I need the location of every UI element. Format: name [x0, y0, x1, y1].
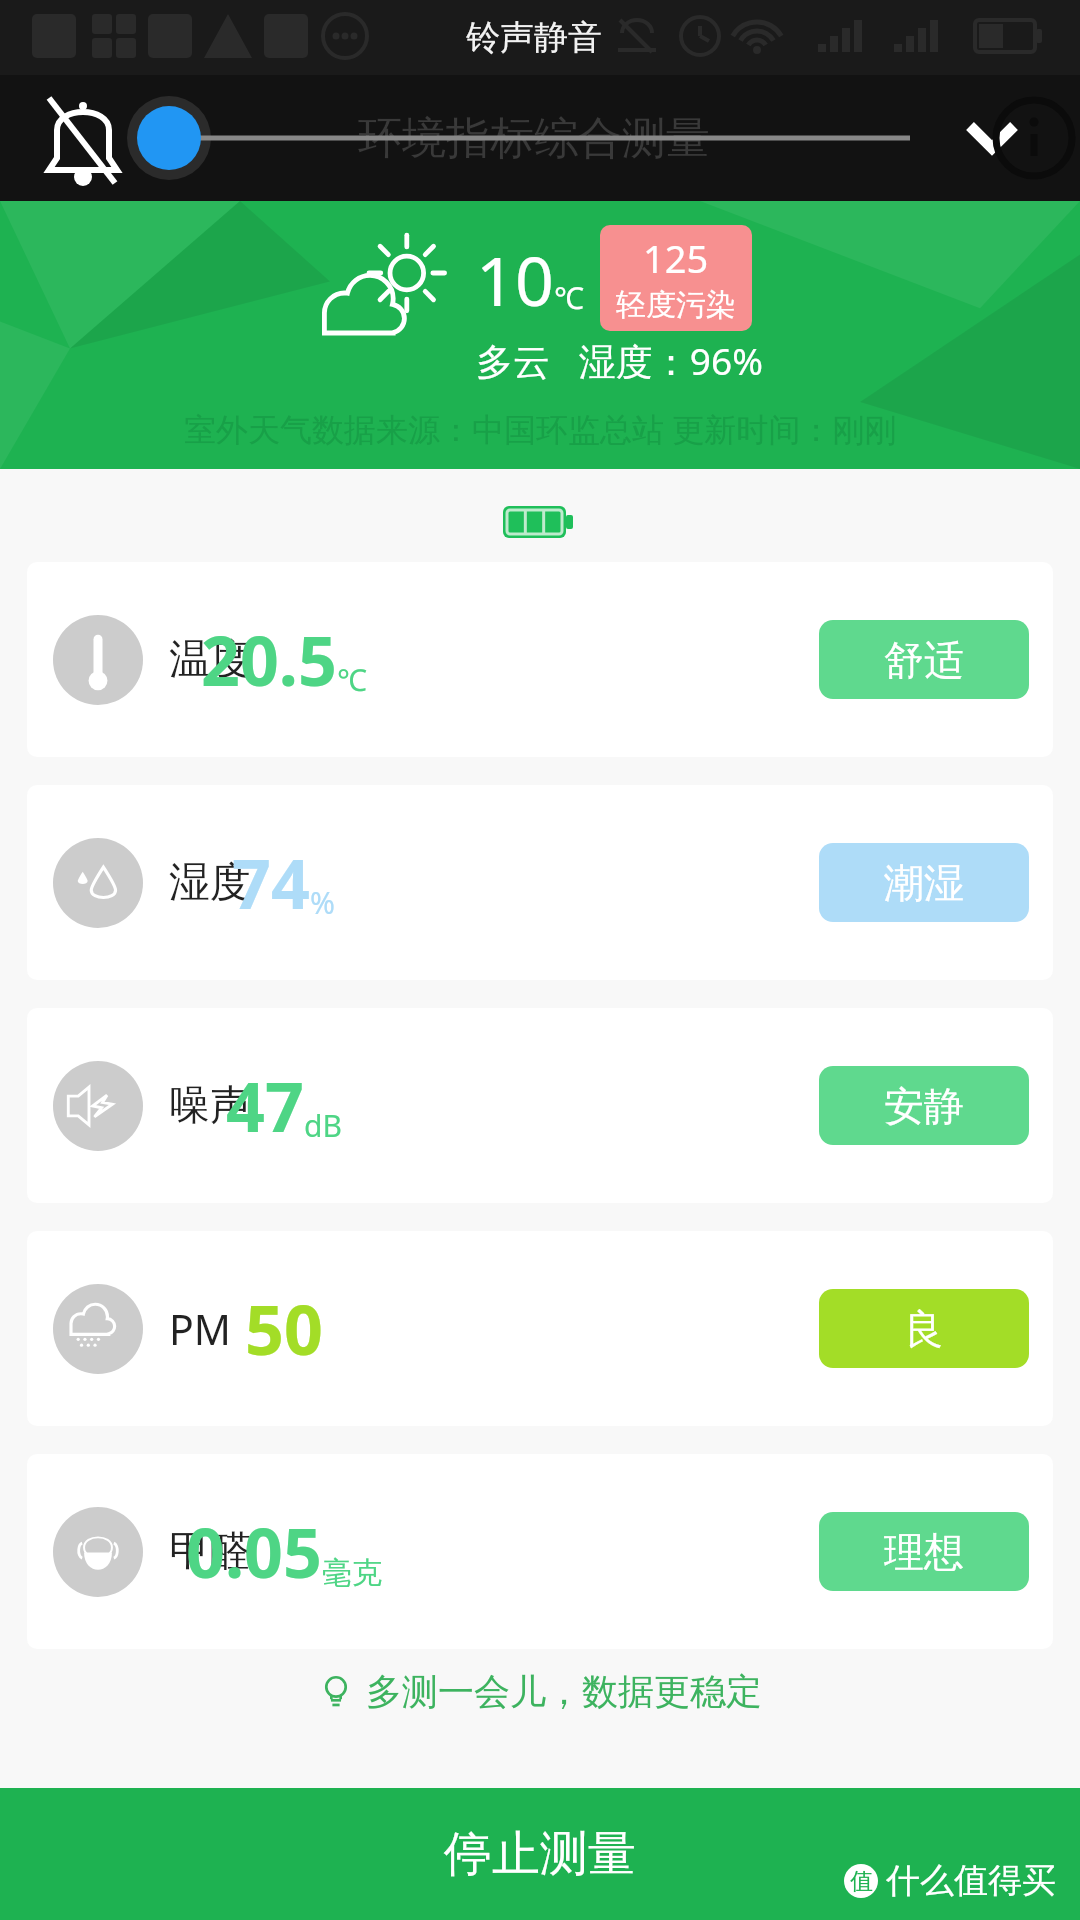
- staticText: 铃声静音: [466, 16, 602, 59]
- staticText: 20.5: [201, 613, 337, 706]
- button[interactable]: 舒适: [819, 620, 1029, 699]
- staticText: 50: [245, 1282, 323, 1375]
- button[interactable]: 停止测量: [0, 1788, 1080, 1920]
- staticText: 理想: [884, 1527, 964, 1577]
- staticText: 安静: [884, 1081, 964, 1131]
- staticText: 0.05: [186, 1505, 322, 1598]
- button[interactable]: 多测一会儿，数据更稳定: [0, 1669, 1080, 1714]
- staticText: PM: [169, 1301, 231, 1357]
- button[interactable]: 温度: [27, 562, 1053, 757]
- staticText: 10: [476, 233, 554, 326]
- staticText: 环境指标综合测量: [358, 111, 710, 166]
- button[interactable]: 理想: [819, 1512, 1029, 1591]
- staticText: 值: [850, 1867, 873, 1896]
- staticText: 47: [226, 1059, 304, 1152]
- staticText: 温度: [169, 634, 251, 686]
- staticText: 多测一会儿，数据更稳定: [366, 1669, 762, 1714]
- staticText: dB: [304, 1105, 342, 1146]
- staticText: ℃: [337, 659, 367, 700]
- staticText: ℃: [554, 277, 584, 318]
- staticText: 室外天气数据来源：中国环监总站 更新时间：刚刚: [184, 407, 897, 451]
- staticText: 74: [232, 836, 310, 929]
- staticText: 125: [643, 232, 709, 284]
- button[interactable]: PM: [27, 1231, 1053, 1426]
- staticText: 噪声: [169, 1080, 251, 1132]
- staticText: 良: [904, 1304, 944, 1354]
- staticText: 多云 湿度：96%: [476, 335, 763, 386]
- button[interactable]: 良: [819, 1289, 1029, 1368]
- staticText: %: [310, 882, 335, 923]
- button[interactable]: 湿度: [27, 785, 1053, 980]
- other: Volume slider: [0, 75, 1080, 201]
- button[interactable]: 噪声: [27, 1008, 1053, 1203]
- button[interactable]: 甲醛: [27, 1454, 1053, 1649]
- staticText: 什么值得买: [886, 1859, 1056, 1902]
- staticText: 停止测量: [444, 1824, 636, 1884]
- staticText: 潮湿: [884, 858, 964, 908]
- staticText: 湿度: [169, 857, 251, 909]
- button[interactable]: 潮湿: [819, 843, 1029, 922]
- button[interactable]: 安静: [819, 1066, 1029, 1145]
- staticText: 甲醛: [169, 1526, 251, 1578]
- staticText: 毫克: [322, 1554, 382, 1592]
- staticText: 舒适: [884, 635, 964, 685]
- staticText: 轻度污染: [616, 286, 736, 324]
